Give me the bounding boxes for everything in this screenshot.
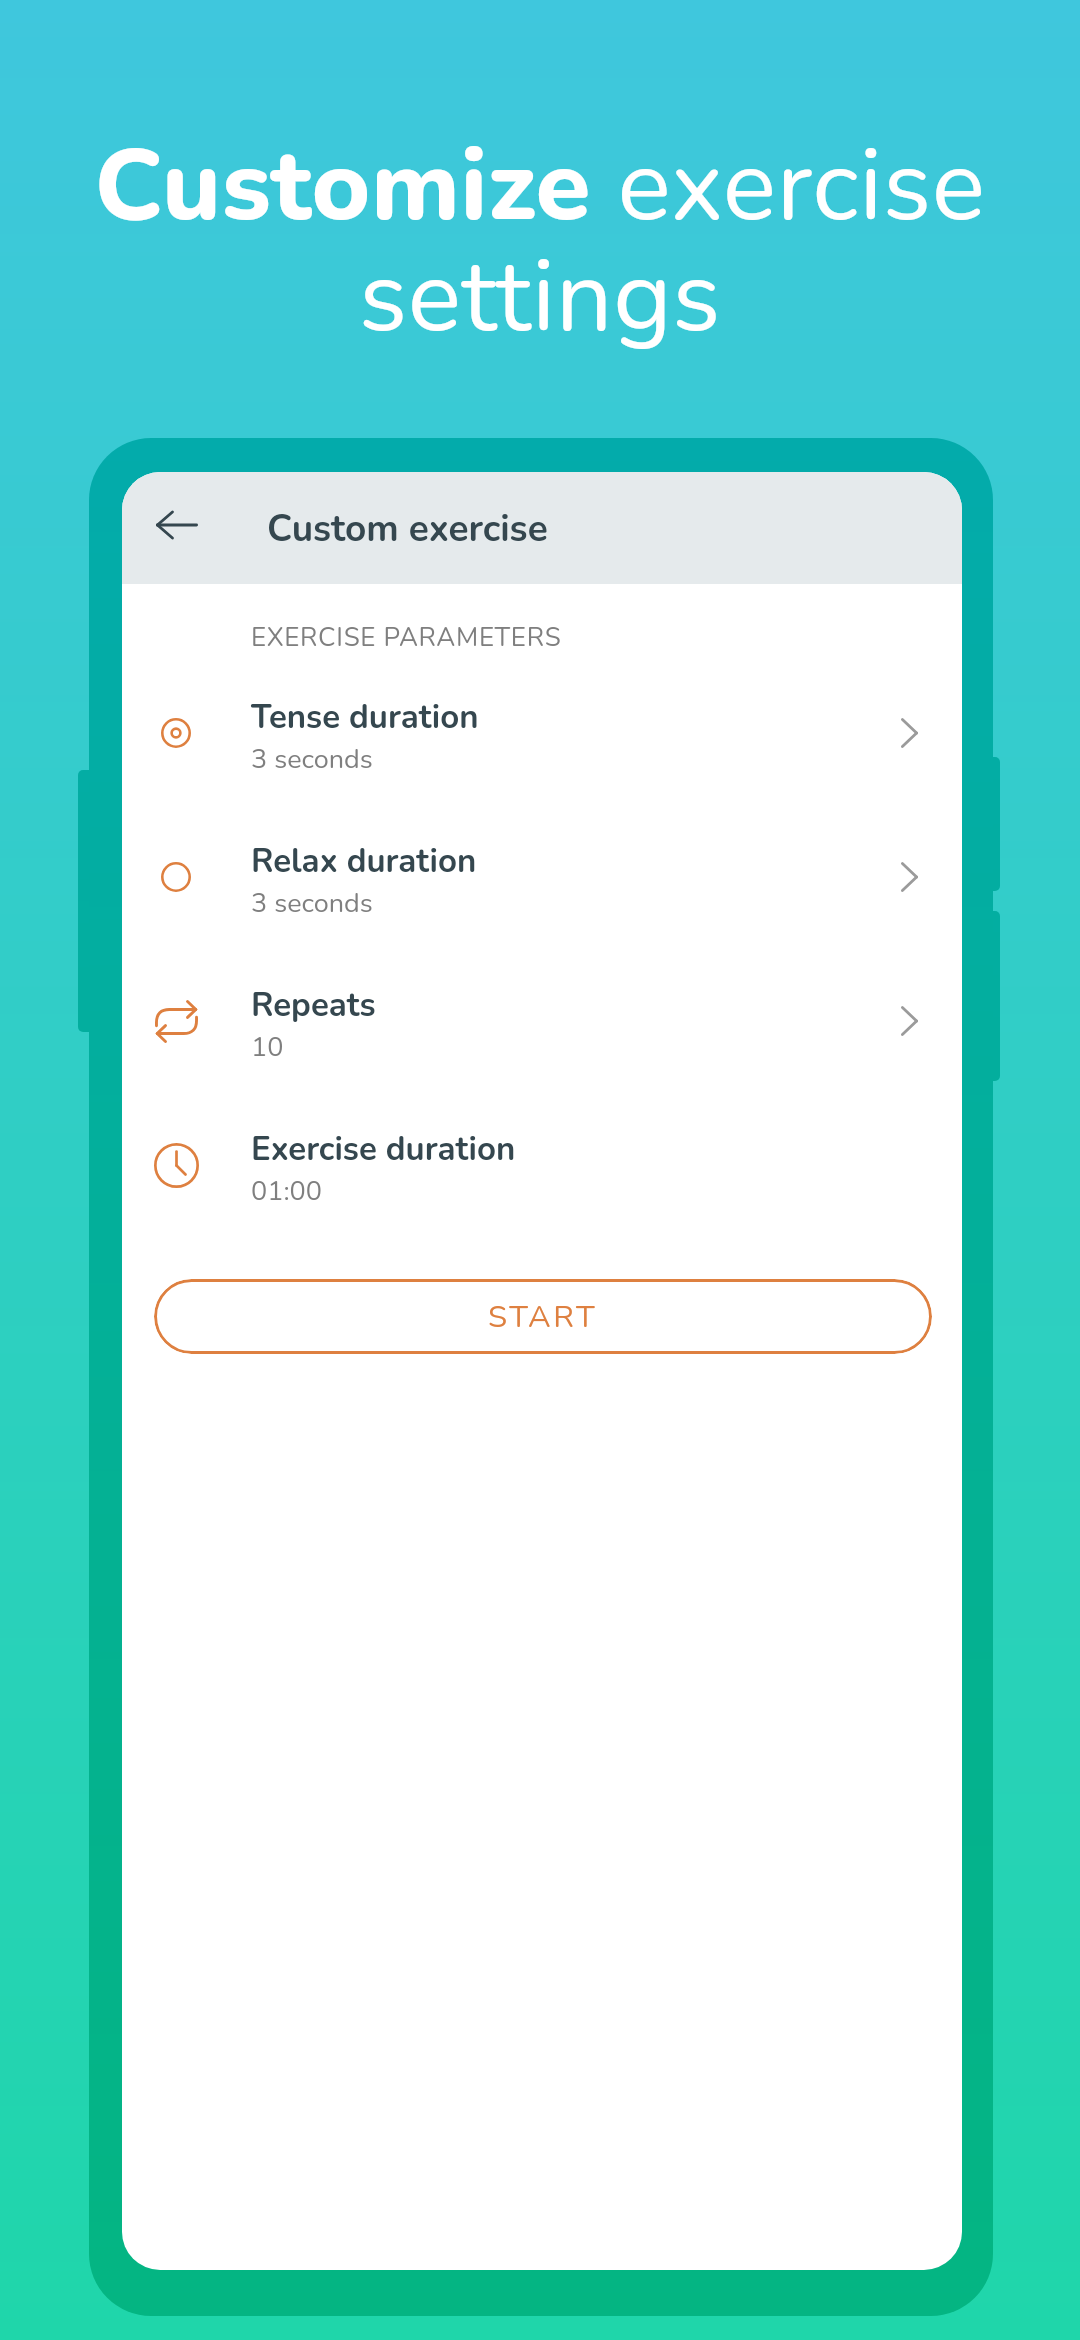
staticText: Relax duration: [251, 839, 477, 884]
staticText: Custom exercise: [267, 504, 548, 554]
staticText: 3 seconds: [251, 741, 373, 778]
staticText: Exercise duration: [251, 1127, 516, 1172]
staticText: START: [488, 1296, 598, 1338]
staticText: 3 seconds: [251, 885, 373, 922]
button[interactable]: Repeats: [122, 952, 962, 1096]
button[interactable]: Back: [132, 472, 222, 581]
staticText: 01:00: [251, 1173, 322, 1210]
staticText: Customize exercise settings: [40, 118, 1040, 366]
button[interactable]: Exercise duration: [122, 1096, 962, 1240]
staticText: Repeats: [251, 983, 376, 1028]
button[interactable]: Tense duration: [122, 664, 962, 808]
staticText: Tense duration: [251, 695, 479, 740]
staticText: 10: [251, 1029, 284, 1066]
button[interactable]: Relax duration: [122, 808, 962, 952]
staticText: EXERCISE PARAMETERS: [251, 620, 562, 655]
button[interactable]: START: [154, 1279, 932, 1354]
